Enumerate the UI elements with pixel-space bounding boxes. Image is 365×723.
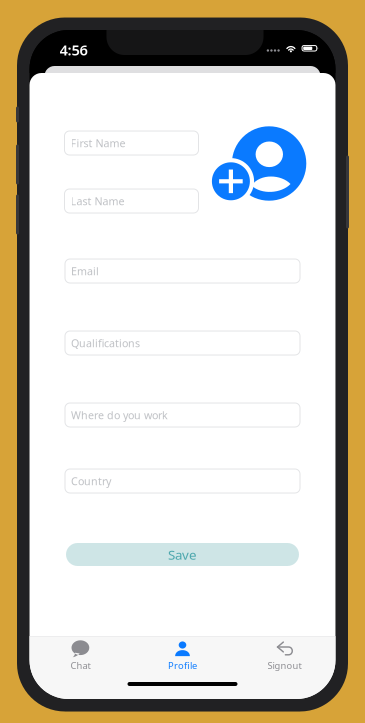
staticText: Chat — [70, 659, 90, 672]
staticText: Qualifications — [71, 336, 140, 350]
button[interactable]: Email — [65, 259, 300, 283]
staticText: 4:56 — [59, 40, 87, 59]
staticText: Save — [168, 546, 197, 563]
button[interactable]: Chat — [29, 637, 131, 675]
button[interactable]: Profile — [131, 637, 233, 675]
staticText: Where do you work — [71, 408, 168, 422]
button[interactable]: Qualifications — [65, 331, 300, 355]
button[interactable]: Signout — [233, 637, 335, 675]
staticText: First Name — [70, 136, 125, 150]
button[interactable]: Country — [65, 469, 300, 493]
staticText: Last Name — [70, 194, 124, 208]
staticText: Signout — [267, 659, 301, 672]
staticText: Profile — [168, 659, 197, 672]
button[interactable]: First Name — [64, 131, 198, 155]
staticText: Email — [71, 264, 99, 278]
button[interactable]: Last Name — [64, 189, 198, 213]
button[interactable]: Save — [66, 543, 299, 566]
button[interactable]: Where do you work — [65, 403, 300, 427]
staticText: Country — [71, 474, 111, 488]
